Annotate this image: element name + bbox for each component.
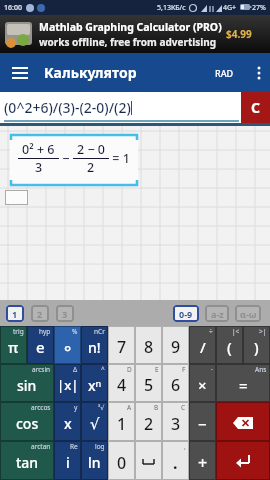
- staticText: (0^2+6)/(3)-(2-0)/(2): [4, 98, 131, 117]
- button[interactable]: [216, 402, 270, 441]
- staticText: C: [181, 403, 186, 412]
- staticText: 2: [87, 159, 95, 176]
- button[interactable]: Mathlab Graphing Calculator (PRO): [0, 15, 270, 53]
- button[interactable]: trig: [0, 326, 27, 364]
- button[interactable]: 1: [6, 305, 24, 322]
- staticText: Δ: [73, 365, 78, 374]
- staticText: >|: [259, 327, 267, 336]
- button[interactable]: D: [108, 364, 135, 402]
- staticText: A: [127, 403, 132, 412]
- staticText: ÷: [209, 327, 213, 336]
- button[interactable]: Ans: [216, 364, 270, 402]
- button[interactable]: 3: [56, 305, 74, 322]
- staticText: ln: [88, 453, 101, 472]
- staticText: Mathlab Graphing Calculator (PRO): [39, 20, 222, 34]
- staticText: (: [227, 337, 232, 357]
- button[interactable]: hyp: [27, 326, 54, 364]
- button[interactable]: −: [189, 402, 216, 441]
- button[interactable]: ·: [189, 364, 216, 402]
- staticText: E: [155, 365, 159, 374]
- staticText: trig: [13, 327, 24, 336]
- button[interactable]: nCr: [81, 326, 108, 364]
- staticText: 3: [62, 308, 68, 320]
- button[interactable]: [216, 441, 270, 480]
- staticText: .: [173, 452, 178, 474]
- button[interactable]: α-ω: [235, 305, 261, 322]
- staticText: ): [254, 337, 259, 357]
- staticText: 9: [171, 336, 181, 358]
- button[interactable]: C: [162, 402, 189, 441]
- button[interactable]: ³√: [81, 402, 108, 441]
- staticText: α-ω: [240, 308, 257, 320]
- button[interactable]: arctan: [0, 441, 54, 480]
- button[interactable]: [135, 441, 162, 480]
- button[interactable]: E: [135, 364, 162, 402]
- button[interactable]: [0, 53, 40, 92]
- staticText: 0² + 6: [22, 141, 55, 158]
- button[interactable]: a-z: [205, 305, 229, 322]
- button[interactable]: 7: [108, 326, 135, 364]
- staticText: 5,13КБ/с: [157, 3, 186, 13]
- button[interactable]: ^: [81, 364, 108, 402]
- button[interactable]: 0-9: [173, 305, 199, 322]
- staticText: 3: [35, 159, 43, 176]
- button[interactable]: ,: [162, 441, 189, 480]
- button[interactable]: [248, 53, 270, 92]
- button[interactable]: y: [54, 402, 81, 441]
- button[interactable]: Δ: [54, 364, 81, 402]
- staticText: 2: [37, 308, 43, 320]
- button[interactable]: 0: [108, 441, 135, 480]
- staticText: =: [239, 375, 248, 395]
- staticText: arctan: [31, 442, 51, 451]
- staticText: 1: [117, 413, 127, 435]
- button[interactable]: B: [135, 402, 162, 441]
- staticText: 6: [171, 374, 181, 396]
- staticText: |x|: [57, 376, 79, 394]
- staticText: 7: [117, 336, 127, 358]
- button[interactable]: ÷: [189, 326, 216, 364]
- staticText: 2: [144, 413, 154, 435]
- staticText: 8: [144, 336, 154, 358]
- staticText: Ans: [255, 365, 267, 374]
- button[interactable]: F: [162, 364, 189, 402]
- staticText: F: [182, 365, 186, 374]
- staticText: ·: [211, 365, 213, 374]
- staticText: arccos: [31, 403, 51, 412]
- staticText: +: [198, 452, 208, 474]
- button[interactable]: log: [81, 441, 108, 480]
- staticText: RAD: [215, 67, 234, 79]
- staticText: i: [66, 453, 70, 472]
- staticText: e: [36, 337, 45, 357]
- button[interactable]: %: [54, 326, 81, 364]
- button[interactable]: Re: [54, 441, 81, 480]
- staticText: −: [198, 414, 207, 434]
- button[interactable]: 9: [162, 326, 189, 364]
- button[interactable]: C: [241, 92, 270, 123]
- button[interactable]: +: [189, 441, 216, 480]
- staticText: D: [127, 365, 132, 374]
- button[interactable]: arccos: [0, 402, 54, 441]
- button[interactable]: >|: [243, 326, 270, 364]
- staticText: y: [74, 403, 78, 412]
- staticText: xⁿ: [88, 376, 102, 395]
- staticText: ³√: [98, 403, 105, 412]
- staticText: π: [8, 337, 19, 357]
- button[interactable]: 2: [31, 305, 49, 322]
- button[interactable]: arcsin: [0, 364, 54, 402]
- button[interactable]: 8: [135, 326, 162, 364]
- staticText: 16:00: [4, 3, 22, 13]
- staticText: works offline, free from advertising: [39, 35, 217, 49]
- staticText: °: [64, 340, 72, 363]
- staticText: B: [154, 403, 159, 412]
- button[interactable]: A: [108, 402, 135, 441]
- staticText: Re: [70, 442, 78, 451]
- staticText: 27%: [252, 3, 266, 13]
- staticText: 2 − 0: [77, 141, 105, 158]
- staticText: sin: [17, 376, 37, 395]
- staticText: n!: [88, 338, 101, 357]
- staticText: 4G+: [223, 3, 237, 13]
- staticText: ×: [198, 375, 207, 395]
- button[interactable]: RAD: [215, 53, 234, 92]
- staticText: x: [64, 414, 72, 433]
- button[interactable]: |<: [216, 326, 243, 364]
